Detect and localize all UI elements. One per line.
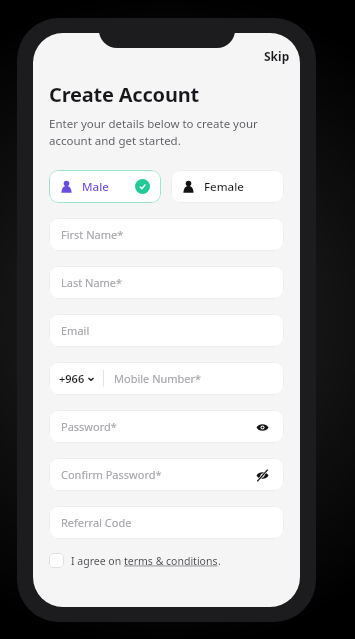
button[interactable]: Hide password — [252, 465, 272, 485]
staticText: I agree on — [71, 554, 124, 568]
staticText: Skip — [264, 48, 290, 64]
staticText: Female — [204, 179, 244, 195]
button[interactable]: Female — [171, 170, 284, 203]
button[interactable]: Mobile Number* — [104, 362, 284, 395]
staticText: Referral Code — [61, 515, 132, 530]
staticText: Confirm Password* — [61, 467, 162, 482]
staticText: Mobile Number* — [114, 371, 202, 386]
other: Agree to terms — [49, 553, 64, 568]
staticText: First Name* — [61, 227, 124, 242]
staticText: Last Name* — [61, 275, 123, 290]
staticText: . — [218, 554, 221, 568]
button[interactable]: Show password — [252, 417, 272, 437]
staticText: Create Account — [49, 81, 199, 108]
button[interactable]: Confirm Password* — [49, 458, 284, 491]
staticText: Male — [82, 179, 109, 195]
button[interactable]: Referral Code — [49, 506, 284, 539]
staticText: Password* — [61, 419, 117, 434]
button[interactable]: Password* — [49, 410, 284, 443]
staticText: +966 — [59, 371, 85, 386]
button[interactable]: +966 — [49, 365, 103, 392]
button[interactable]: Male — [49, 170, 161, 203]
button[interactable]: Email — [49, 314, 284, 347]
button[interactable]: Agree to terms — [49, 553, 284, 568]
button[interactable]: Skip — [254, 43, 300, 69]
staticText: terms & conditions — [124, 554, 218, 568]
staticText: Enter your details below to create your … — [49, 116, 258, 148]
button[interactable]: Last Name* — [49, 266, 284, 299]
button[interactable]: First Name* — [49, 218, 284, 251]
staticText: Email — [61, 323, 90, 338]
